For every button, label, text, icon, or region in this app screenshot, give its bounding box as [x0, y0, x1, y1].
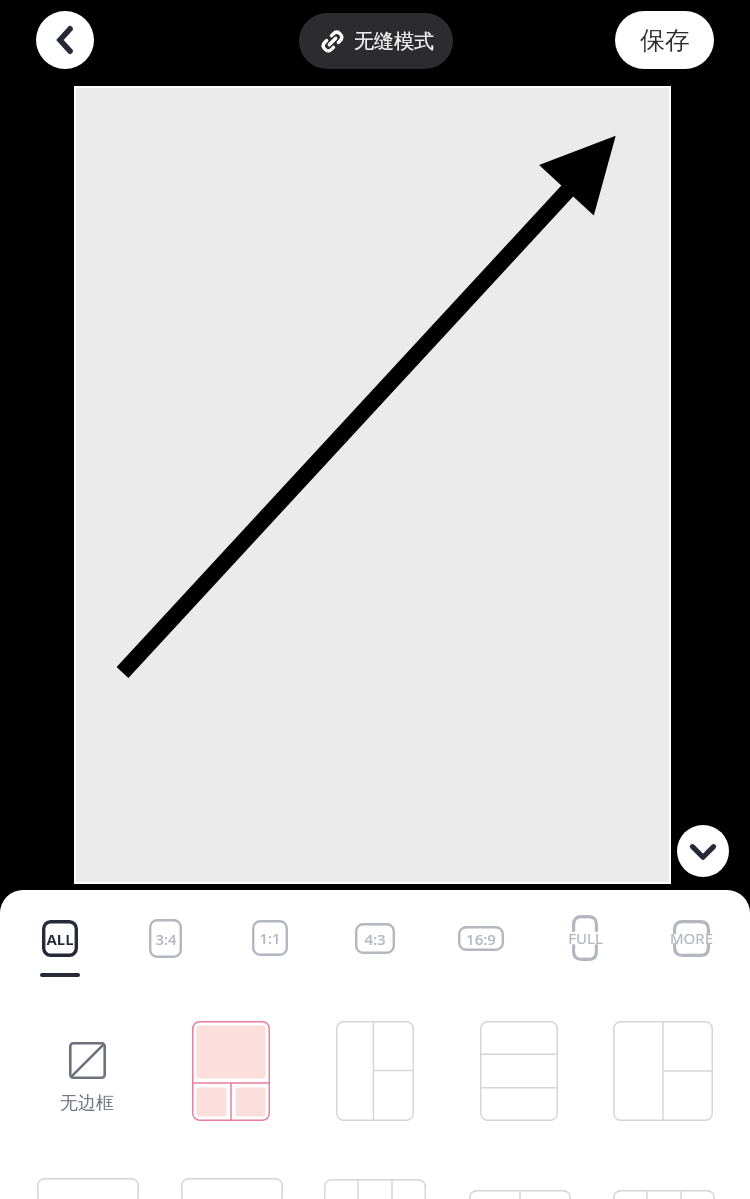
button[interactable]: 1:1: [240, 908, 300, 988]
button[interactable]: Back: [36, 11, 94, 69]
button[interactable]: Collage layout 1: [192, 1021, 270, 1121]
button[interactable]: Collage layout 7: [324, 1179, 426, 1199]
staticText: 4:3: [364, 929, 386, 949]
button[interactable]: Collage layout 3: [480, 1021, 558, 1121]
staticText: 16:9: [466, 929, 496, 949]
button[interactable]: ALL: [30, 908, 90, 988]
staticText: 3:4: [155, 929, 177, 949]
button[interactable]: Collage layout 5: [37, 1178, 139, 1199]
button[interactable]: Collapse panel: [677, 825, 729, 877]
button[interactable]: Collage layout 9: [613, 1190, 715, 1199]
button[interactable]: FULL: [555, 906, 615, 970]
button[interactable]: 4:3: [345, 908, 405, 988]
staticText: 无缝模式: [354, 29, 434, 54]
button[interactable]: 无缝模式: [299, 13, 453, 69]
staticText: MORE: [670, 928, 713, 948]
staticText: ALL: [46, 929, 74, 949]
button[interactable]: MORE: [661, 906, 721, 970]
staticText: 保存: [640, 25, 690, 56]
button[interactable]: Collage layout 4: [613, 1021, 713, 1121]
button[interactable]: Collage layout 8: [469, 1190, 571, 1199]
staticText: 1:1: [259, 928, 281, 948]
staticText: FULL: [568, 928, 603, 948]
staticText: 无边框: [60, 1092, 114, 1115]
button[interactable]: 无边框: [32, 1042, 142, 1132]
button[interactable]: 保存: [615, 11, 714, 69]
button[interactable]: 3:4: [135, 908, 195, 988]
button[interactable]: Collage layout 2: [336, 1021, 414, 1121]
button[interactable]: Collage layout 6: [181, 1178, 283, 1199]
button[interactable]: 16:9: [451, 908, 511, 988]
